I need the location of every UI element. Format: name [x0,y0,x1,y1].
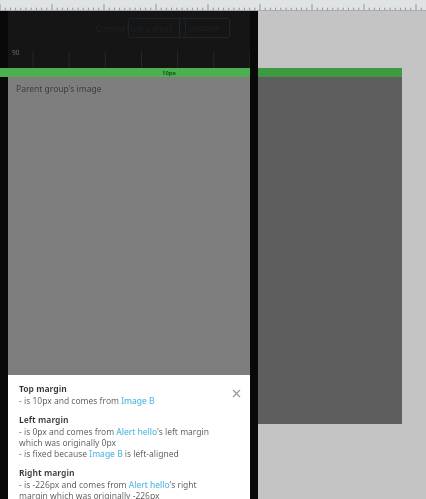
staticText: 10px [162,69,177,77]
staticText: - is fixed because Image B is left-align… [19,448,179,460]
staticText: Left margin [19,414,69,426]
button[interactable]: Current User's email [94,23,175,34]
staticText: 90 [12,48,20,57]
staticText: Current User's email [96,23,173,34]
staticText: - is 10px and comes from Image B [19,395,155,407]
staticText: LOGOUT [189,23,220,33]
staticText: - is -226px and comes from Alert hello's… [19,479,224,499]
staticText: Top margin [19,383,67,395]
button[interactable]: LOGOUT [179,18,230,38]
staticText: Parent group's image [16,83,102,95]
staticText: Right margin [19,467,75,479]
staticText: - is 0px and comes from Alert hello's le… [19,426,224,448]
button[interactable]: Close [228,385,244,401]
